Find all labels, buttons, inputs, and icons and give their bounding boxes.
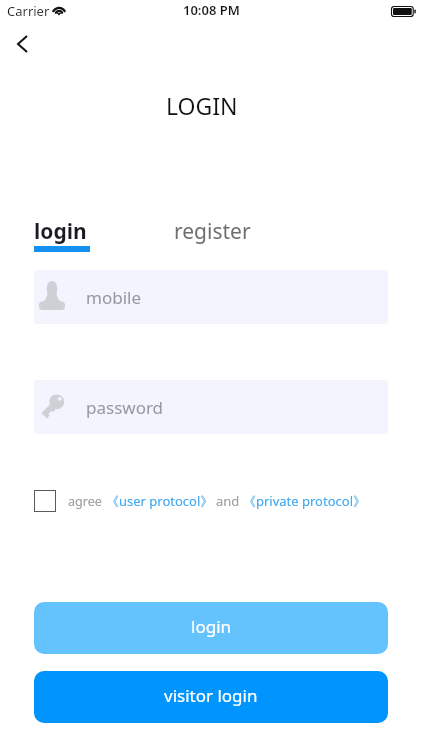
staticText: and xyxy=(216,492,240,510)
button[interactable]: password xyxy=(34,380,388,434)
staticText: mobile xyxy=(86,286,141,309)
staticText: LOGIN xyxy=(166,90,238,121)
staticText: register xyxy=(174,217,251,246)
staticText: password xyxy=(86,396,164,419)
staticText: 《private protocol》 xyxy=(243,492,367,510)
button[interactable]: mobile xyxy=(34,270,388,324)
button[interactable]: register xyxy=(174,217,251,246)
button[interactable]: 《user protocol》 xyxy=(106,492,214,510)
button[interactable]: login xyxy=(34,217,87,246)
button[interactable]: visitor login xyxy=(34,671,388,723)
staticText: 10:08 PM xyxy=(183,1,240,19)
staticText: visitor login xyxy=(164,684,258,707)
button[interactable]: Back xyxy=(0,27,44,61)
button[interactable]: Agree to protocol checkbox xyxy=(34,490,56,512)
staticText: Carrier xyxy=(7,2,50,20)
staticText: agree xyxy=(68,493,102,510)
button[interactable]: 《private protocol》 xyxy=(243,492,367,510)
staticText: 《user protocol》 xyxy=(106,492,214,510)
button[interactable]: login xyxy=(34,602,388,654)
staticText: login xyxy=(34,217,87,246)
staticText: login xyxy=(191,615,232,638)
